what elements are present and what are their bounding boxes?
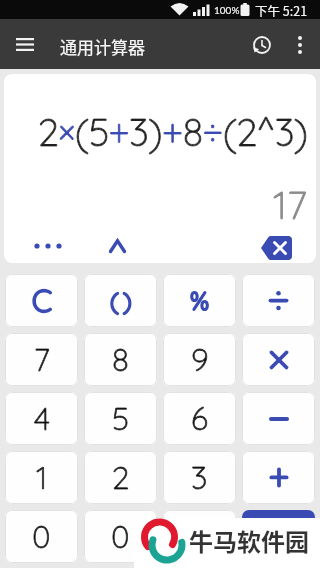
staticText: 7: [34, 339, 50, 378]
staticText: 4: [34, 398, 50, 437]
button[interactable]: [163, 510, 236, 563]
staticText: C: [32, 282, 52, 320]
button[interactable]: [98, 230, 136, 262]
button[interactable]: 0: [84, 510, 157, 563]
staticText: 3: [191, 457, 208, 496]
button[interactable]: [22, 232, 74, 260]
button[interactable]: [242, 510, 315, 563]
button[interactable]: [284, 28, 316, 62]
staticText: 2: [112, 457, 130, 496]
button[interactable]: 7: [5, 333, 78, 386]
button[interactable]: 0: [5, 510, 78, 563]
staticText: 6: [191, 398, 208, 437]
staticText: 1: [36, 457, 48, 496]
staticText: 17: [273, 180, 307, 229]
button[interactable]: ( ): [84, 274, 157, 327]
button[interactable]: C: [5, 274, 78, 327]
staticText: C: [32, 282, 52, 320]
staticText: ( ): [110, 286, 131, 315]
staticText: 7: [34, 339, 50, 378]
button[interactable]: %: [163, 274, 236, 327]
staticText: 2×(5+3)+8÷(2^3): [38, 108, 308, 156]
staticText: 牛马软件园: [189, 523, 309, 558]
button[interactable]: 2: [84, 451, 157, 504]
button[interactable]: 8: [84, 333, 157, 386]
staticText: 9: [191, 339, 209, 378]
staticText: ( ): [110, 286, 131, 315]
button[interactable]: [242, 451, 315, 504]
staticText: 下午 5:21: [255, 1, 308, 19]
button[interactable]: 1: [5, 451, 78, 504]
staticText: 100%: [214, 4, 240, 16]
staticText: 0: [32, 516, 51, 555]
staticText: 0: [32, 516, 51, 555]
staticText: 5: [112, 398, 129, 437]
button[interactable]: 5: [84, 392, 157, 445]
button[interactable]: 4: [5, 392, 78, 445]
staticText: 8: [112, 339, 129, 378]
staticText: 9: [191, 339, 209, 378]
button[interactable]: 9: [163, 333, 236, 386]
button[interactable]: [8, 27, 42, 61]
button[interactable]: [242, 333, 315, 386]
staticText: %: [190, 285, 210, 316]
button[interactable]: [245, 28, 279, 62]
staticText: 2×(5+3)+8÷(2^3): [38, 108, 308, 156]
button[interactable]: 6: [163, 392, 236, 445]
button[interactable]: 3: [163, 451, 236, 504]
staticText: 4: [34, 398, 50, 437]
staticText: 2: [112, 457, 130, 496]
staticText: 通用计算器: [60, 34, 145, 59]
staticText: %: [190, 285, 210, 316]
staticText: 8: [112, 339, 129, 378]
staticText: 0: [111, 516, 130, 555]
staticText: 17: [273, 180, 307, 229]
button[interactable]: [251, 230, 301, 263]
staticText: 5: [112, 398, 129, 437]
staticText: 3: [191, 457, 208, 496]
staticText: 6: [191, 398, 208, 437]
button[interactable]: [242, 274, 315, 327]
staticText: 0: [111, 516, 130, 555]
button[interactable]: [242, 392, 315, 445]
staticText: 1: [36, 457, 48, 496]
